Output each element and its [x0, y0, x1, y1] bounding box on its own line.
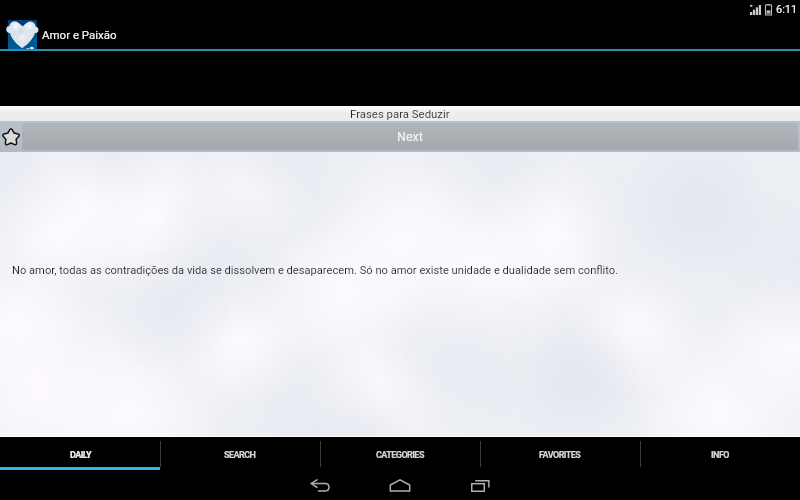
- button[interactable]: SEARCH: [160, 437, 320, 470]
- staticText: INFO: [711, 450, 729, 461]
- staticText: FAVORITES: [539, 450, 581, 461]
- button[interactable]: INFO: [640, 437, 800, 470]
- staticText: Amor e Paixão: [42, 28, 117, 41]
- staticText: 6:11: [776, 3, 798, 16]
- staticText: SEARCH: [224, 450, 256, 461]
- button[interactable]: Amor e Paixão: [0, 19, 800, 49]
- button[interactable]: Favorite: [0, 126, 22, 148]
- button[interactable]: CATEGORIES: [320, 437, 480, 470]
- button[interactable]: FAVORITES: [480, 437, 640, 470]
- button[interactable]: Recent apps: [465, 472, 495, 498]
- staticText: CATEGORIES: [376, 450, 424, 461]
- button[interactable]: Next: [22, 123, 798, 150]
- staticText: DAILY: [70, 450, 91, 461]
- staticText: Next: [397, 129, 423, 144]
- button[interactable]: Home: [385, 472, 415, 498]
- button[interactable]: Back: [305, 472, 335, 498]
- staticText: No amor, todas as contradições da vida s…: [12, 264, 619, 277]
- staticText: Frases para Seduzir: [350, 107, 450, 120]
- button[interactable]: DAILY: [0, 437, 160, 470]
